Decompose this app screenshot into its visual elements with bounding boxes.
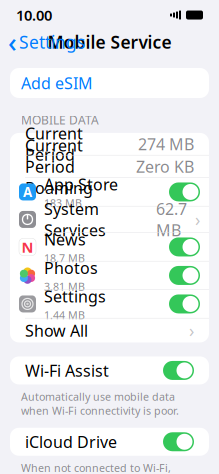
staticText: A bbox=[23, 183, 32, 201]
staticText: Settings bbox=[44, 286, 106, 307]
staticText: 3.81 MB bbox=[44, 279, 85, 294]
button[interactable]: Settings bbox=[10, 290, 209, 318]
staticText: › bbox=[195, 208, 200, 231]
staticText: Add eSIM bbox=[21, 72, 93, 94]
button[interactable]: Show All bbox=[10, 318, 209, 342]
button[interactable]: ‹ bbox=[0, 20, 85, 64]
button[interactable]: Wi-Fi Assist bbox=[10, 356, 209, 384]
staticText: N bbox=[21, 237, 33, 257]
button[interactable]: iCloud Drive bbox=[10, 428, 209, 456]
button[interactable]: Add eSIM bbox=[10, 68, 209, 98]
staticText: 1.44 MB bbox=[44, 308, 85, 322]
button[interactable]: Current Period Roaming bbox=[10, 155, 209, 177]
staticText: Automatically use mobile data when Wi-Fi… bbox=[21, 389, 179, 418]
button[interactable]: Photos bbox=[10, 261, 209, 289]
staticText: 62.7 MB bbox=[156, 198, 187, 241]
staticText: News bbox=[44, 229, 86, 250]
staticText: Mobile Service bbox=[47, 30, 171, 53]
staticText: 183 MB bbox=[44, 196, 82, 210]
staticText: Wi-Fi Assist bbox=[25, 360, 109, 381]
staticText: ‹ bbox=[8, 24, 17, 60]
staticText: Show All bbox=[25, 320, 88, 341]
staticText: 18.7 MB bbox=[44, 251, 85, 265]
staticText: MOBILE DATA bbox=[21, 112, 99, 128]
button[interactable]: Current Period bbox=[10, 133, 209, 155]
staticText: Photos bbox=[44, 257, 98, 278]
button[interactable]: System Services bbox=[10, 206, 209, 232]
staticText: Current Period bbox=[25, 123, 83, 165]
button[interactable]: A bbox=[10, 178, 209, 206]
staticText: Zero KB bbox=[136, 156, 194, 177]
staticText: 10.00 bbox=[16, 5, 52, 25]
staticText: › bbox=[189, 319, 194, 342]
staticText: App Store bbox=[44, 174, 118, 195]
button[interactable]: N bbox=[10, 233, 209, 261]
staticText: System Services bbox=[44, 198, 106, 241]
staticText: iCloud Drive bbox=[25, 431, 117, 452]
staticText: Settings bbox=[19, 30, 85, 53]
staticText: Current Period Roaming bbox=[25, 135, 93, 198]
staticText: When not connected to Wi-Fi, use mobile … bbox=[21, 461, 177, 474]
staticText: 274 MB bbox=[138, 133, 194, 154]
